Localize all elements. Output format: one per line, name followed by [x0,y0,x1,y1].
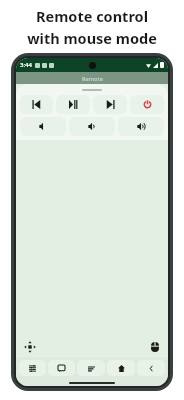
button[interactable]: List [77,360,105,376]
button[interactable]: Next [93,95,127,114]
button[interactable]: Play pause [56,95,90,114]
button[interactable]: Power [130,95,164,114]
button[interactable]: Previous [20,95,53,114]
button[interactable]: Directional pad [23,340,36,353]
staticText: 3:44 [20,61,32,69]
button[interactable]: Volume up [118,117,164,136]
staticText: Remote control [36,6,148,26]
button[interactable]: Mouse mode [148,340,161,353]
button[interactable]: Mute [20,117,66,136]
button[interactable]: Volume down [69,117,115,136]
staticText: Remote [82,75,103,82]
button[interactable]: Home [107,360,135,376]
button[interactable]: Back [137,360,165,376]
button[interactable]: Chat [48,360,75,376]
staticText: with mouse mode [27,28,157,48]
button[interactable]: Settings [19,360,46,376]
